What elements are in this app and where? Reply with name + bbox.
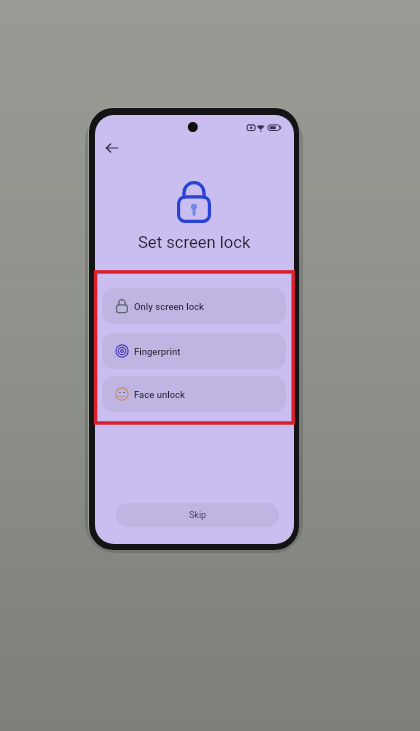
- staticText: Skip: [189, 510, 207, 521]
- staticText: Face unlock: [134, 389, 185, 400]
- staticText: Fingerprint: [134, 346, 181, 357]
- button[interactable]: Fingerprint: [102, 333, 286, 369]
- staticText: Set screen lock: [138, 233, 251, 252]
- button[interactable]: Only screen lock: [102, 288, 286, 324]
- button[interactable]: Face unlock: [102, 376, 286, 412]
- button[interactable]: Skip: [116, 503, 279, 527]
- button[interactable]: Back: [100, 136, 124, 160]
- staticText: Only screen lock: [134, 301, 205, 312]
